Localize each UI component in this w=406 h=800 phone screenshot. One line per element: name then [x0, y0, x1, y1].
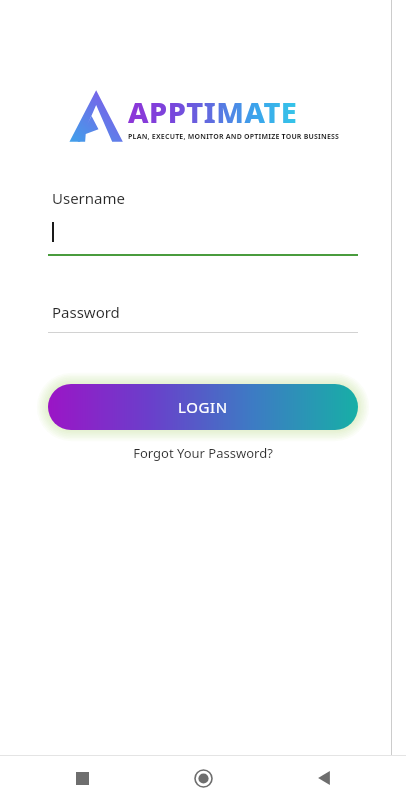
staticText: Forgot Your Password?	[133, 444, 273, 462]
button[interactable]: Back	[302, 756, 346, 800]
button[interactable]: Recent apps	[60, 756, 104, 800]
button[interactable]: Home	[181, 756, 225, 800]
button[interactable]: Forgot Your Password?	[123, 441, 283, 465]
button[interactable]: LOGIN	[48, 384, 358, 430]
other: Apptimate logo	[66, 86, 124, 146]
button[interactable]: Password	[48, 302, 358, 333]
button[interactable]: Username	[48, 188, 358, 256]
staticText: LOGIN	[178, 397, 228, 417]
staticText: PLAN, EXECUTE, MONITOR AND OPTIMIZE TOUR…	[128, 132, 340, 142]
staticText: Password	[52, 302, 120, 322]
staticText: APPTIMATE	[128, 92, 298, 131]
staticText: Username	[52, 188, 125, 208]
